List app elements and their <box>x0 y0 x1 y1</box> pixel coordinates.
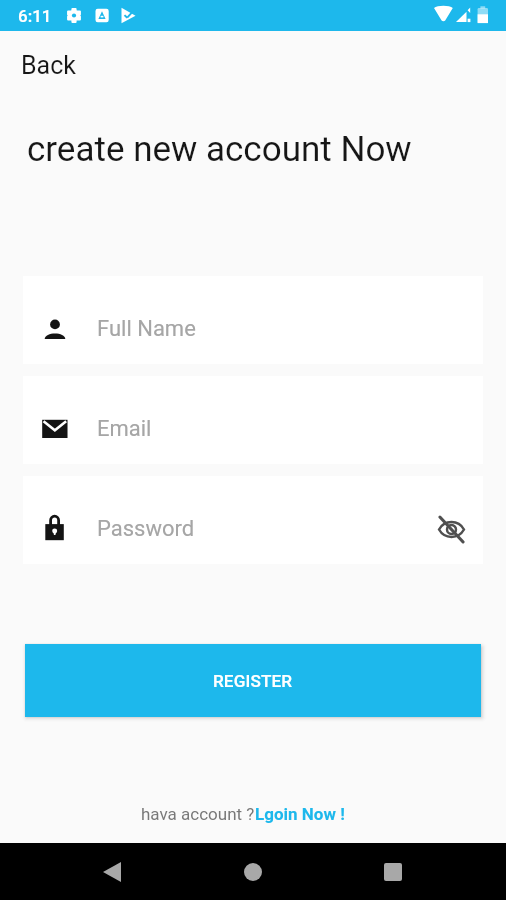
staticText: 6:11 <box>18 6 52 26</box>
button[interactable]: Show password <box>420 494 483 564</box>
button[interactable]: Recents <box>366 845 420 899</box>
button[interactable]: Back <box>0 43 506 87</box>
staticText: create new account Now <box>27 129 412 170</box>
button[interactable]: REGISTER <box>25 644 481 717</box>
staticText: REGISTER <box>213 671 293 691</box>
button[interactable]: hava account ? <box>0 799 496 829</box>
staticText: Full Name <box>97 316 483 342</box>
button[interactable]: Password <box>23 476 483 564</box>
button[interactable]: Home <box>226 845 280 899</box>
staticText: Email <box>97 416 483 442</box>
staticText: hava account ? <box>141 804 255 824</box>
staticText: Password <box>97 516 420 542</box>
staticText: Back <box>21 51 76 80</box>
button[interactable]: Email <box>23 376 483 464</box>
button[interactable]: Back <box>85 845 139 899</box>
staticText: Lgoin Now ! <box>255 804 345 824</box>
button[interactable]: Full Name <box>23 276 483 364</box>
